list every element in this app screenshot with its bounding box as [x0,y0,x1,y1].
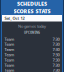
staticText: 7:30 [52,47,59,52]
staticText: No games today [18,23,46,29]
staticText: Team [4,68,14,72]
staticText: 7:30 [52,36,59,42]
staticText: 7:30 [52,57,59,62]
staticText: Sat, Oct 12 [4,16,24,21]
staticText: 7:30 [52,52,59,57]
staticText: Team [4,57,14,62]
staticText: 7:30 [52,42,59,47]
staticText: Team [4,36,14,42]
staticText: Team [4,47,14,52]
staticText: 7:30 [52,62,59,68]
staticText: Team [4,52,14,57]
staticText: 7:30 [52,68,59,72]
staticText: Team [4,42,14,47]
staticText: Team [4,62,14,68]
staticText: SCORES STATS [13,8,50,15]
staticText: UPCOMING [24,31,40,34]
staticText: SCHEDULES [17,0,47,7]
